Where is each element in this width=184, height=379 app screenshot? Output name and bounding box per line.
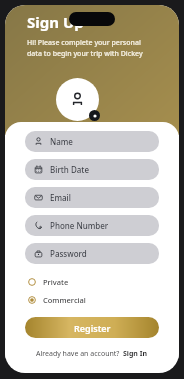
staticText: Sign Up <box>27 12 84 32</box>
staticText: Hi! Please complete your personal data t… <box>27 38 143 58</box>
button[interactable]: Birth Date <box>25 159 159 180</box>
staticText: Phone Number <box>50 220 109 231</box>
staticText: Birth Date <box>50 164 90 175</box>
staticText: Sign In <box>123 349 148 359</box>
button[interactable]: Private <box>25 275 159 288</box>
staticText: Email <box>50 192 71 203</box>
staticText: Register <box>74 322 111 334</box>
staticText: Commercial <box>43 295 86 305</box>
button[interactable]: Commercial <box>25 293 159 306</box>
button[interactable]: Register <box>25 317 159 338</box>
staticText: Name <box>50 136 73 147</box>
button[interactable]: Sign In <box>123 349 148 359</box>
button[interactable]: Change photo <box>89 110 100 121</box>
staticText: Private <box>43 277 69 287</box>
button[interactable]: Password <box>25 243 159 264</box>
staticText: Password <box>50 248 87 259</box>
button[interactable]: Email <box>25 187 159 208</box>
button[interactable]: Profile photo <box>56 78 99 121</box>
button[interactable]: Name <box>25 131 159 152</box>
staticText: Already have an account? <box>36 349 120 359</box>
button[interactable]: Phone Number <box>25 215 159 236</box>
